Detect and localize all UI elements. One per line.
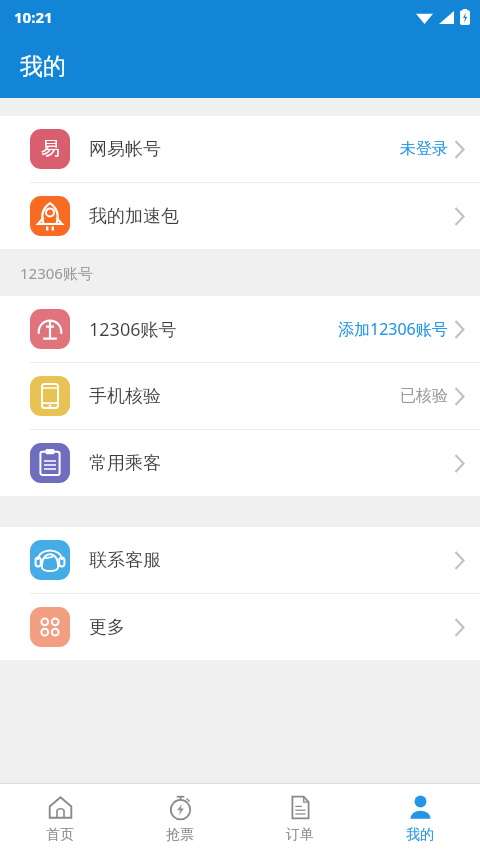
- staticText: 已核验: [400, 386, 448, 406]
- button[interactable]: 我的: [360, 784, 480, 853]
- staticText: 添加12306账号: [338, 318, 448, 340]
- button[interactable]: 易: [0, 116, 480, 182]
- button[interactable]: 联系客服: [0, 527, 480, 593]
- staticText: 网易帐号: [89, 138, 161, 161]
- staticText: 联系客服: [89, 549, 161, 572]
- staticText: 我的: [20, 52, 66, 81]
- staticText: 抢票: [166, 826, 194, 844]
- button[interactable]: 抢票: [120, 784, 240, 853]
- staticText: 易: [41, 137, 60, 161]
- staticText: 常用乘客: [89, 452, 161, 475]
- staticText: 我的: [406, 826, 434, 844]
- button[interactable]: 订单: [240, 784, 360, 853]
- staticText: 订单: [286, 826, 314, 844]
- button[interactable]: 我的加速包: [0, 183, 480, 249]
- button[interactable]: 12306账号: [0, 296, 480, 362]
- staticText: 未登录: [400, 139, 448, 159]
- staticText: 手机核验: [89, 385, 161, 408]
- staticText: 我的加速包: [89, 205, 179, 228]
- staticText: 10:21: [14, 7, 53, 27]
- staticText: 12306账号: [20, 263, 93, 283]
- staticText: 12306账号: [89, 317, 177, 342]
- button[interactable]: 更多: [0, 594, 480, 660]
- button[interactable]: 手机核验: [0, 363, 480, 429]
- button[interactable]: 常用乘客: [0, 430, 480, 496]
- staticText: 更多: [89, 616, 125, 639]
- button[interactable]: 首页: [0, 784, 120, 853]
- staticText: 首页: [46, 826, 74, 844]
